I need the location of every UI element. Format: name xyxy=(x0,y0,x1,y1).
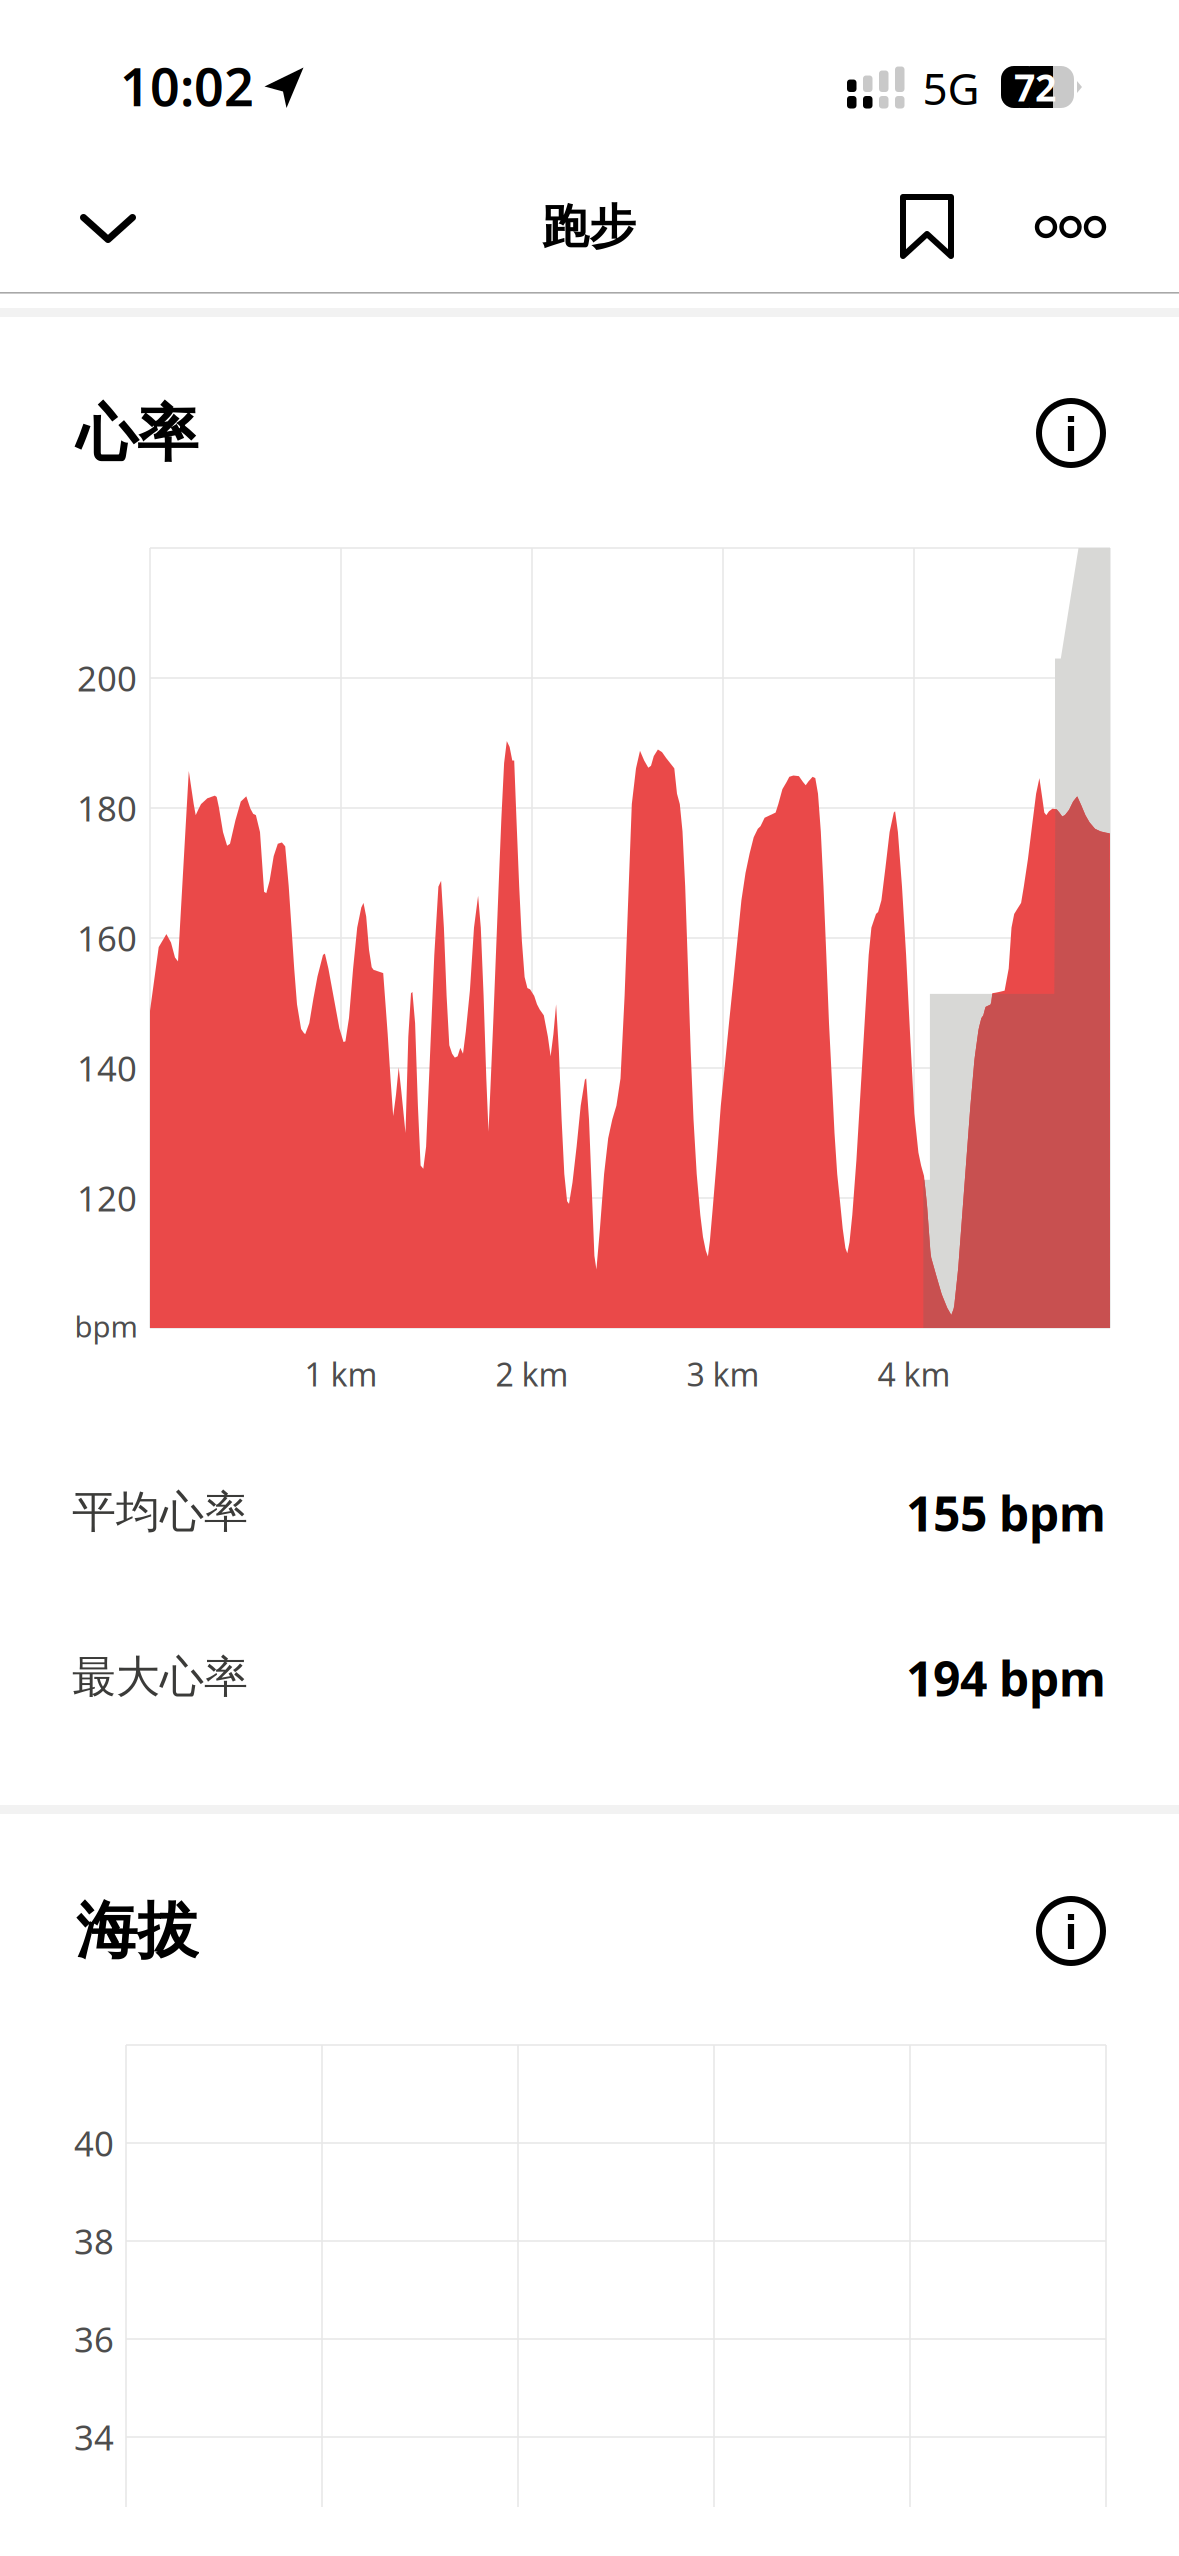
staticText: 120 xyxy=(77,1175,137,1221)
staticText: 38 xyxy=(74,2218,114,2264)
staticText: 海拔 xyxy=(76,1893,198,1969)
button[interactable]: About heart rate xyxy=(1027,389,1115,477)
staticText: 3 km xyxy=(686,1353,759,1395)
staticText: 10:02 xyxy=(120,51,254,121)
staticText: 1 km xyxy=(304,1353,377,1395)
button[interactable]: Bookmark xyxy=(879,172,975,280)
staticText: 40 xyxy=(74,2120,114,2166)
staticText: 平均心率 xyxy=(72,1485,248,1539)
staticText: 72 xyxy=(1014,62,1056,112)
staticText: 180 xyxy=(77,785,137,831)
staticText: 200 xyxy=(77,655,137,701)
staticText: 2 km xyxy=(495,1353,568,1395)
staticText: 最大心率 xyxy=(72,1650,248,1704)
button[interactable]: Collapse xyxy=(52,174,164,282)
staticText: 心率 xyxy=(76,396,198,472)
button[interactable]: More options xyxy=(1018,173,1122,281)
staticText: 跑步 xyxy=(542,198,636,256)
staticText: 34 xyxy=(74,2414,114,2460)
button[interactable]: About elevation xyxy=(1027,1887,1115,1975)
staticText: 155 bpm xyxy=(906,1481,1106,1545)
staticText: 160 xyxy=(77,915,137,961)
staticText: 194 bpm xyxy=(906,1646,1106,1710)
staticText: 4 km xyxy=(877,1353,950,1395)
staticText: 5G xyxy=(922,59,979,117)
staticText: bpm xyxy=(74,1306,137,1345)
staticText: 140 xyxy=(77,1045,137,1091)
staticText: 36 xyxy=(74,2316,114,2362)
